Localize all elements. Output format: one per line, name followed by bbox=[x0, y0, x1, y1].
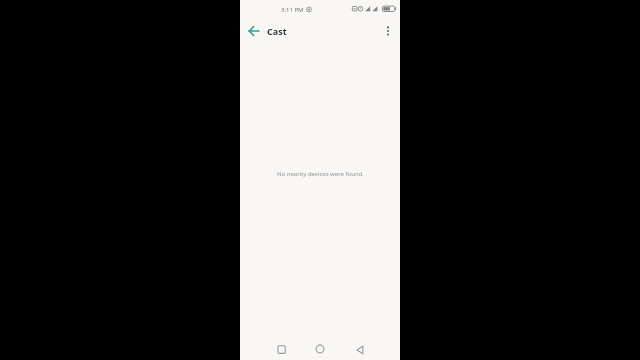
staticText: Cast bbox=[267, 25, 287, 37]
button[interactable] bbox=[350, 340, 370, 360]
button[interactable] bbox=[310, 339, 330, 359]
staticText: 3:11 PM bbox=[281, 6, 304, 14]
staticText: No nearby devices were found. bbox=[277, 170, 364, 178]
button[interactable] bbox=[378, 21, 398, 41]
button[interactable] bbox=[271, 339, 291, 359]
button[interactable] bbox=[244, 21, 264, 41]
